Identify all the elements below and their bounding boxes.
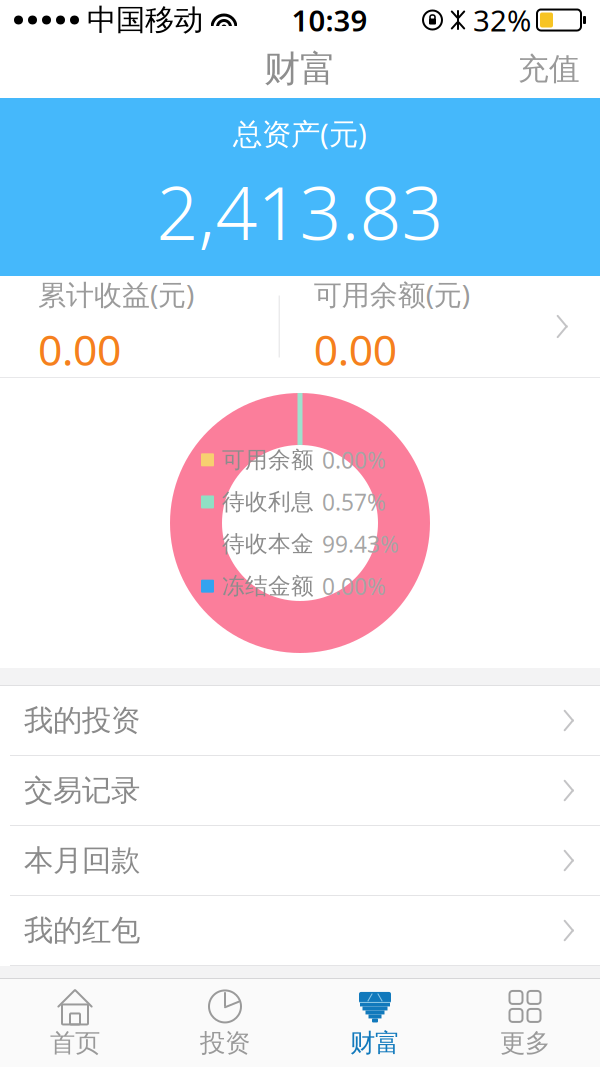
staticText: 待收本金 xyxy=(222,530,314,558)
button[interactable]: 财富 xyxy=(300,979,450,1067)
staticText: 冻结金额 xyxy=(222,572,314,600)
staticText: 投资 xyxy=(200,1027,250,1058)
staticText: 交易记录 xyxy=(24,772,140,808)
staticText: 可用余额 xyxy=(222,446,314,474)
button[interactable]: 交易记录 xyxy=(0,756,600,826)
staticText: 充值 xyxy=(518,50,580,88)
staticText: 中国移动 xyxy=(87,2,203,38)
staticText: 本月回款 xyxy=(24,842,140,878)
button[interactable]: 本月回款 xyxy=(0,826,600,896)
staticText: 更多 xyxy=(500,1027,550,1058)
button[interactable]: 我的红包 xyxy=(0,896,600,966)
staticText: 财富 xyxy=(350,1027,400,1058)
staticText: 0.00 xyxy=(38,321,121,377)
staticText: 我的红包 xyxy=(24,912,140,948)
button[interactable]: 我的投资 xyxy=(0,686,600,756)
staticText: 首页 xyxy=(50,1027,100,1058)
button[interactable]: 首页 xyxy=(0,979,150,1067)
button[interactable]: 充值 xyxy=(498,40,600,98)
staticText: 财富 xyxy=(264,47,336,91)
staticText: 待收利息 xyxy=(222,488,314,516)
staticText: 32% xyxy=(473,0,531,39)
staticText: 0.00 xyxy=(314,321,397,377)
staticText: 10:39 xyxy=(291,0,367,39)
staticText: 累计收益(元) xyxy=(38,276,194,313)
button[interactable]: 更多 xyxy=(450,979,600,1067)
staticText: 总资产(元) xyxy=(233,114,367,153)
button[interactable]: 投资 xyxy=(150,979,300,1067)
staticText: 我的投资 xyxy=(24,702,140,738)
button[interactable]: 累计收益(元) xyxy=(0,276,600,377)
staticText: 2,413.83 xyxy=(156,163,443,260)
staticText: 可用余额(元) xyxy=(314,276,470,313)
staticText: 0.00% xyxy=(322,445,386,475)
staticText: 99.43% xyxy=(322,529,399,559)
staticText: 0.00% xyxy=(322,571,386,601)
staticText: 0.57% xyxy=(322,487,386,517)
